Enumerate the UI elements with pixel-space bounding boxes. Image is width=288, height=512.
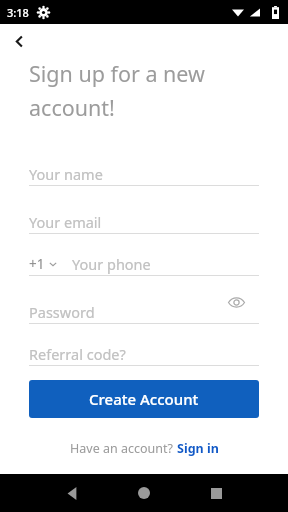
button[interactable]: Show password (223, 289, 250, 316)
button[interactable]: Your email (29, 210, 259, 233)
staticText: Your name (29, 164, 103, 184)
button[interactable]: Password (29, 300, 259, 323)
button[interactable]: Back (66, 487, 79, 500)
button[interactable]: Create Account (29, 380, 259, 418)
staticText: Your phone (72, 254, 151, 274)
staticText: Sign in (177, 440, 219, 457)
staticText: Your email (29, 212, 102, 232)
staticText: Password (29, 302, 95, 322)
button[interactable]: Home (133, 482, 155, 504)
button[interactable]: Referral code? (29, 342, 259, 365)
staticText: +1 (29, 255, 45, 273)
staticText: Sign up for a new (29, 59, 205, 88)
button[interactable]: Recent apps (205, 482, 227, 504)
button[interactable]: +1 (29, 252, 259, 275)
staticText: Create Account (89, 389, 199, 409)
staticText: account! (29, 93, 115, 122)
button[interactable]: Sign in (177, 440, 219, 457)
staticText: 3:18 (7, 5, 29, 20)
staticText: Have an account? (70, 440, 177, 457)
staticText: Referral code? (29, 344, 126, 364)
button[interactable]: Back (2, 24, 36, 58)
button[interactable]: Your name (29, 162, 259, 185)
